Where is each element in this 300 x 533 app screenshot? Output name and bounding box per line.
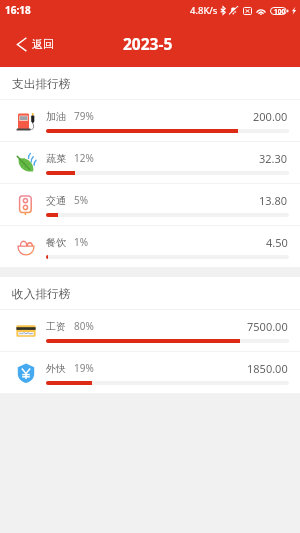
button[interactable]: 蔬菜 (0, 142, 300, 184)
button[interactable]: 加油 (0, 100, 300, 142)
staticText: 32.30 (259, 151, 288, 166)
staticText: 16:18 (5, 3, 31, 17)
button[interactable]: 工资 (0, 310, 300, 352)
staticText: 返回 (32, 37, 54, 51)
staticText: 交通 (46, 194, 66, 207)
staticText: 支出排行榜 (12, 77, 71, 92)
staticText: 5% (74, 193, 89, 207)
staticText: 19% (74, 361, 94, 375)
staticText: 外快 (46, 362, 66, 375)
staticText: 1850.00 (247, 361, 288, 376)
button[interactable]: 餐饮 (0, 226, 300, 268)
staticText: 工资 (46, 320, 66, 333)
staticText: 13.80 (259, 193, 288, 208)
staticText: 4.50 (266, 235, 288, 250)
button[interactable]: 外快 (0, 352, 300, 394)
staticText: 4.8K/s (190, 4, 218, 17)
staticText: 收入排行榜 (12, 287, 71, 302)
staticText: 200.00 (253, 109, 288, 124)
staticText: 1% (74, 235, 89, 249)
staticText: 79% (74, 109, 94, 123)
staticText: 7500.00 (247, 319, 288, 334)
staticText: 12% (74, 151, 94, 165)
button[interactable]: 交通 (0, 184, 300, 226)
staticText: 蔬菜 (46, 152, 66, 165)
staticText: 2023-5 (123, 33, 173, 54)
button[interactable]: Back (0, 28, 68, 60)
staticText: 100 (274, 7, 286, 15)
staticText: 餐饮 (46, 236, 66, 249)
staticText: 80% (74, 319, 94, 333)
staticText: 加油 (46, 110, 66, 123)
